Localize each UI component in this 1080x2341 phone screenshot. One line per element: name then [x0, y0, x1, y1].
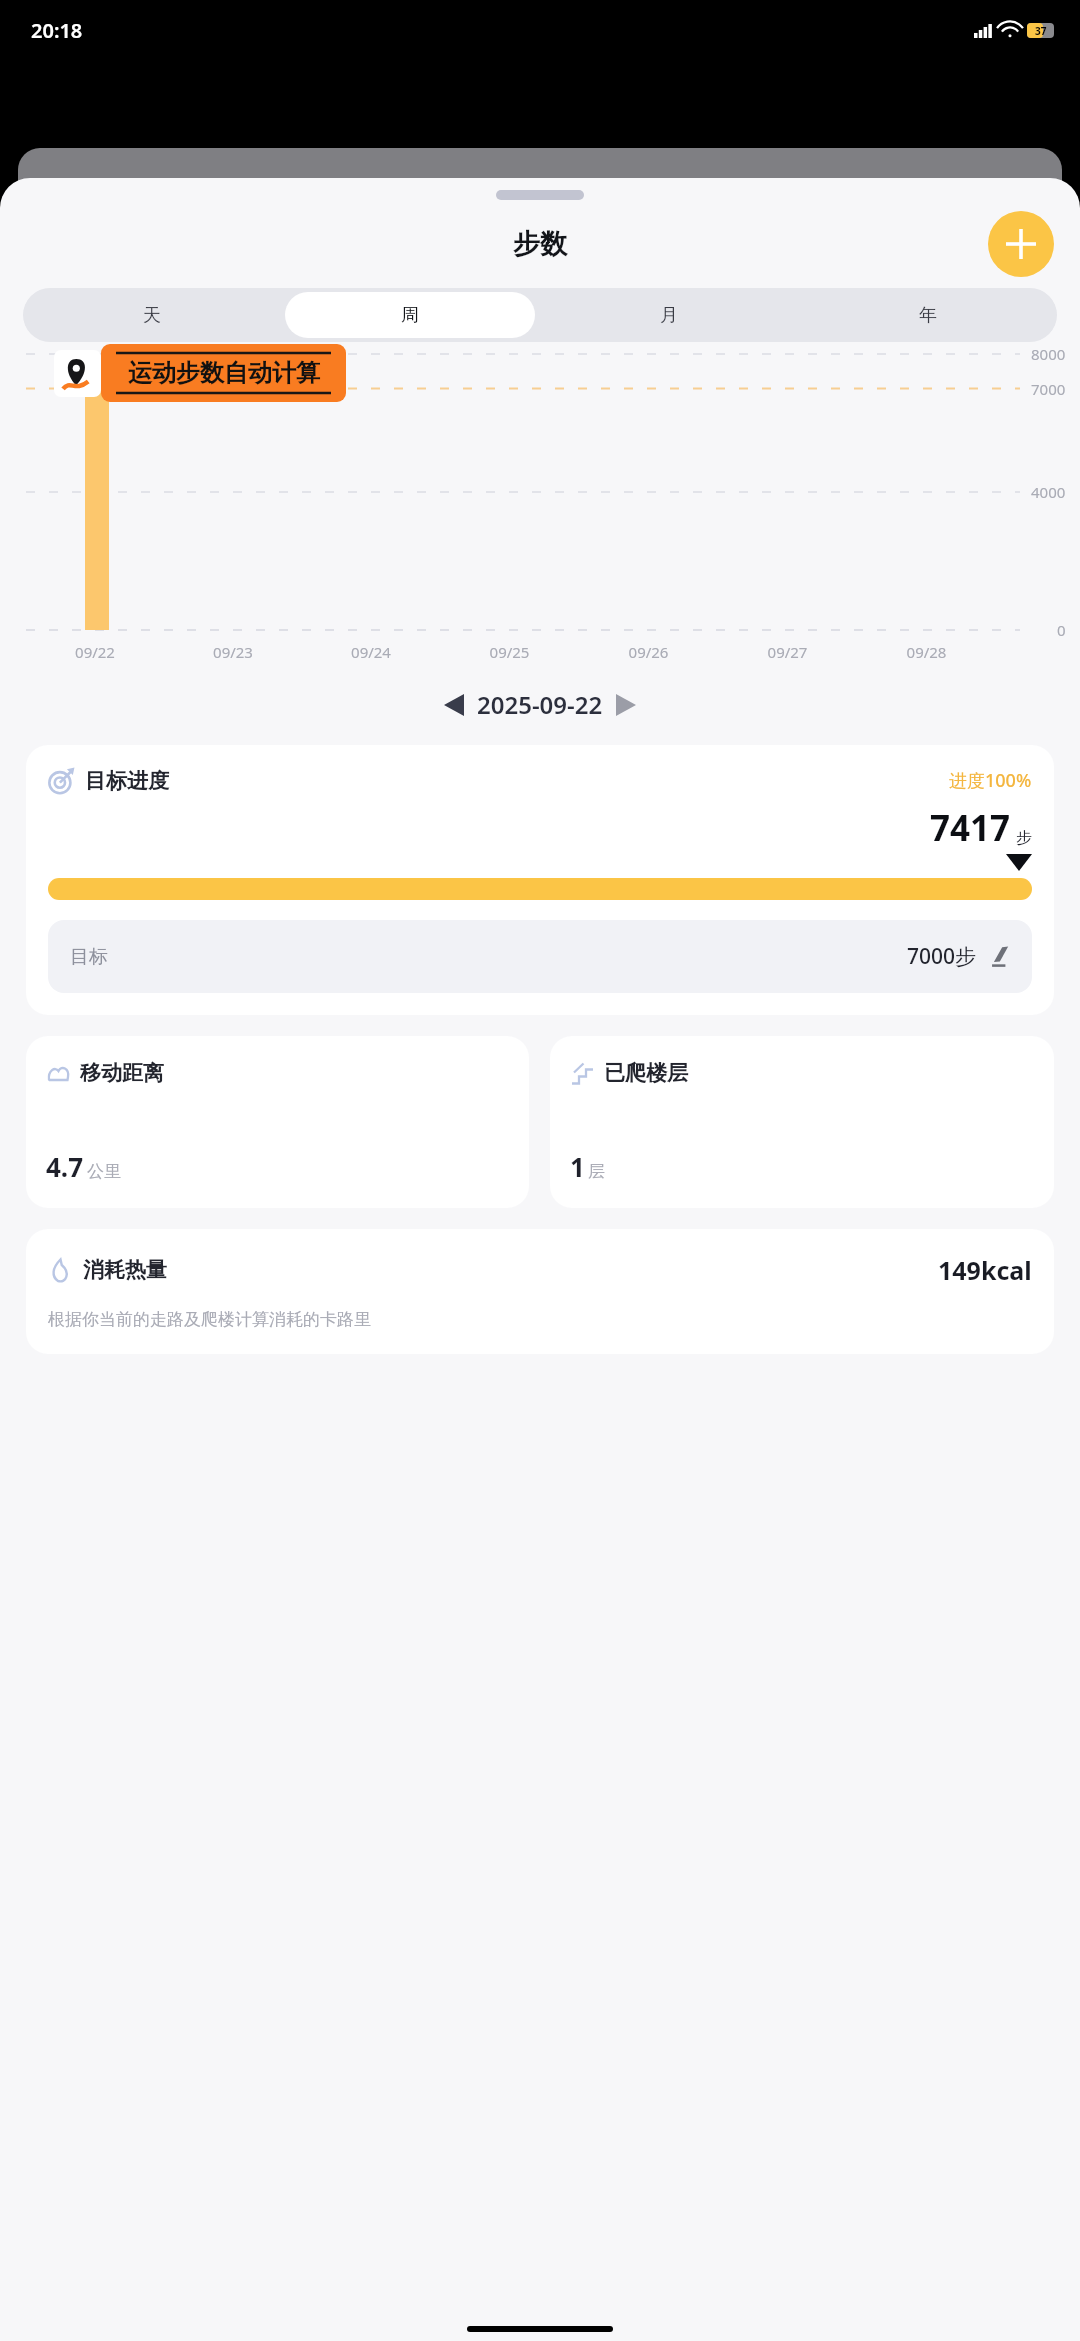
staticText: 7417 [930, 804, 1011, 852]
staticText: 1 [570, 1149, 585, 1184]
button[interactable]: 目标 [48, 920, 1032, 993]
staticText: 步 [1016, 828, 1032, 848]
staticText: 8000 [1031, 344, 1066, 364]
staticText: 步数 [513, 227, 567, 261]
staticText: 149kcal [938, 1253, 1032, 1287]
button[interactable]: 移动距离 [26, 1036, 529, 1208]
staticText: 37 [1035, 24, 1047, 38]
button[interactable]: 2025-09-22 [0, 688, 1080, 721]
button[interactable]: Add [988, 211, 1054, 277]
staticText: 2025-09-22 [477, 688, 603, 721]
button[interactable]: 月 [543, 292, 794, 338]
staticText: 09/23 [164, 642, 302, 662]
staticText: 周 [401, 304, 419, 327]
staticText: 目标进度 [85, 768, 169, 794]
button[interactable]: 已爬楼层 [550, 1036, 1054, 1208]
staticText: 运动步数自动计算 [128, 358, 320, 388]
button[interactable]: 年 [802, 292, 1053, 338]
staticText: 09/26 [579, 642, 718, 662]
staticText: 进度100% [949, 768, 1032, 793]
staticText: 09/24 [302, 642, 440, 662]
staticText: 移动距离 [80, 1060, 164, 1086]
staticText: 09/25 [440, 642, 579, 662]
button[interactable]: 消耗热量 [26, 1229, 1054, 1354]
staticText: 层 [588, 1161, 605, 1182]
staticText: 消耗热量 [83, 1257, 167, 1283]
staticText: 目标 [70, 945, 108, 969]
staticText: 20:18 [31, 17, 83, 44]
staticText: 0 [1057, 620, 1066, 640]
staticText: 09/28 [857, 642, 996, 662]
button[interactable]: 周 [285, 292, 535, 338]
staticText: 年 [919, 304, 937, 327]
staticText: 天 [143, 304, 161, 327]
staticText: 09/22 [26, 642, 164, 662]
staticText: 09/27 [718, 642, 857, 662]
button[interactable]: Advertisement [54, 344, 346, 402]
staticText: 4000 [1031, 482, 1066, 502]
staticText: 7000步 [907, 942, 977, 971]
staticText: 4.7 [46, 1149, 84, 1184]
staticText: 公里 [87, 1161, 121, 1182]
staticText: 7000 [1031, 379, 1066, 399]
staticText: 已爬楼层 [604, 1060, 688, 1086]
staticText: 月 [660, 304, 678, 327]
button[interactable]: 目标进度 [26, 745, 1054, 1015]
staticText: 根据你当前的走路及爬楼计算消耗的卡路里 [48, 1309, 371, 1330]
button[interactable]: 天 [27, 292, 277, 338]
